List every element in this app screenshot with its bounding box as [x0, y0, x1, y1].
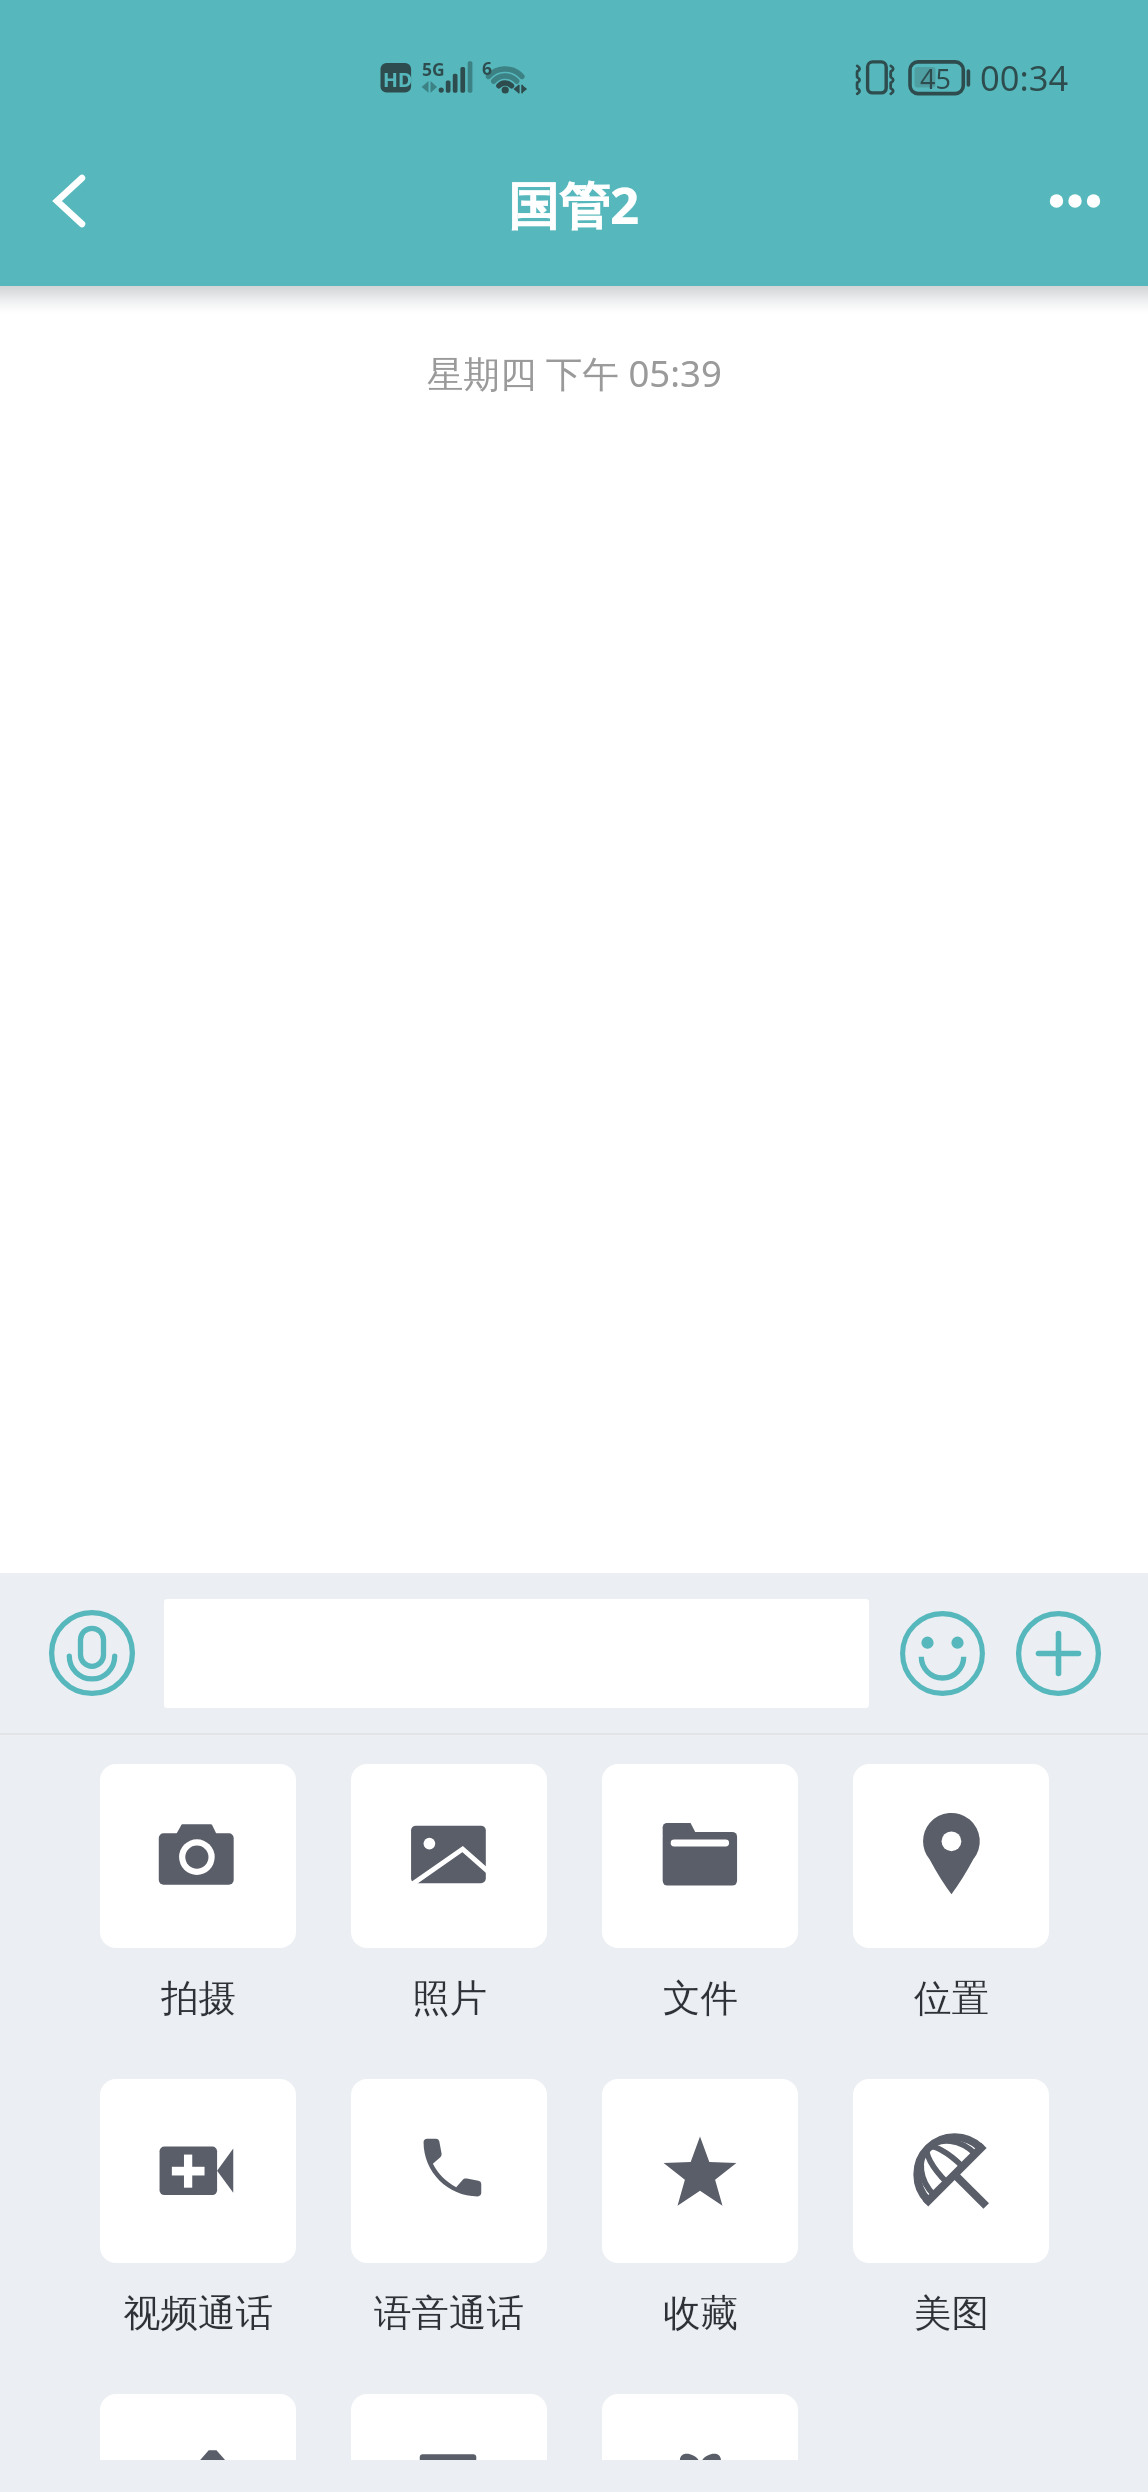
staticText: 国管2: [508, 169, 640, 239]
button[interactable]: Emoji: [900, 1611, 985, 1696]
button[interactable]: [351, 2394, 547, 2460]
staticText: 文件: [663, 1975, 738, 2022]
staticText: 收藏: [663, 2290, 738, 2337]
staticText: 照片: [412, 1975, 487, 2022]
button[interactable]: [602, 2394, 798, 2460]
staticText: 6: [482, 56, 493, 80]
staticText: 视频通话: [123, 2290, 273, 2337]
button[interactable]: 拍摄: [100, 1764, 296, 2028]
button[interactable]: [100, 2394, 296, 2460]
button[interactable]: 视频通话: [100, 2079, 296, 2343]
staticText: 00:34: [980, 54, 1069, 101]
staticText: 语音通话: [374, 2290, 524, 2337]
button[interactable]: 美图: [853, 2079, 1049, 2343]
staticText: 拍摄: [161, 1975, 236, 2022]
button[interactable]: 收藏: [602, 2079, 798, 2343]
button[interactable]: 照片: [351, 1764, 547, 2028]
staticText: 5G: [422, 57, 445, 81]
button[interactable]: Voice message: [49, 1610, 135, 1696]
staticText: 星期四 下午 05:39: [427, 348, 722, 398]
staticText: 45: [920, 60, 951, 97]
button[interactable]: More options: [1010, 136, 1140, 266]
button[interactable]: 位置: [853, 1764, 1049, 2028]
button[interactable]: 文件: [602, 1764, 798, 2028]
staticText: HD: [383, 66, 413, 93]
button[interactable]: Back: [3, 136, 133, 266]
button[interactable]: More: [1016, 1611, 1101, 1696]
staticText: 美图: [914, 2290, 989, 2337]
staticText: 位置: [914, 1975, 989, 2022]
button[interactable]: 语音通话: [351, 2079, 547, 2343]
